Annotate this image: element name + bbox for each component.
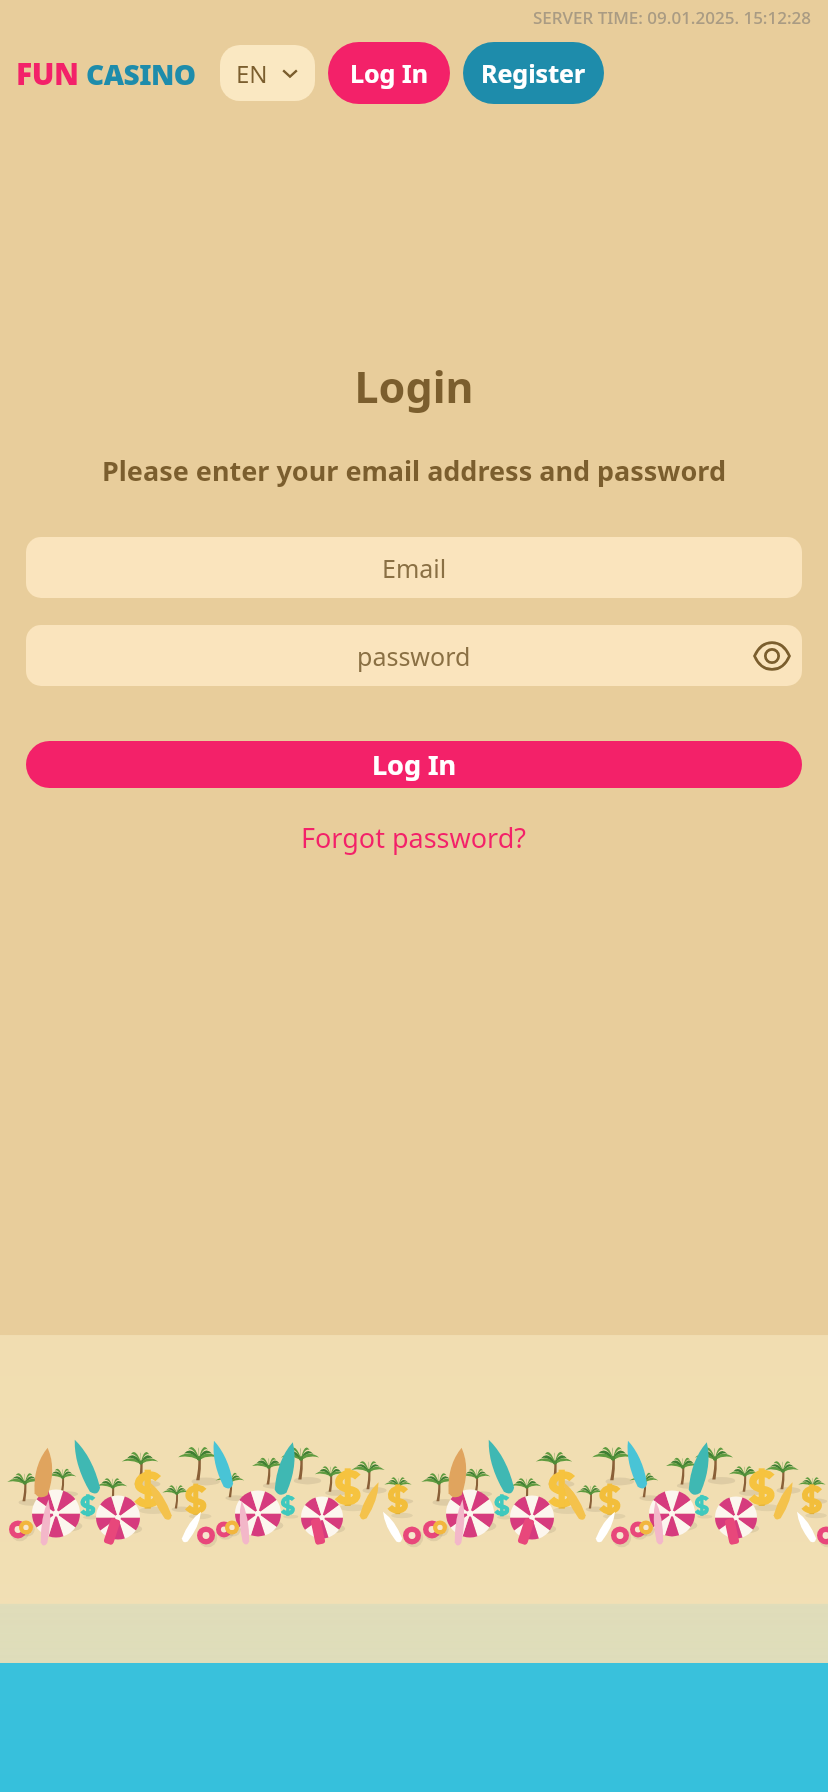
staticText: Please enter your email address and pass… [48,452,780,489]
staticText: FUN [16,53,79,94]
staticText: Register [481,56,586,90]
staticText: password [357,639,471,673]
staticText: EN [236,57,268,90]
button[interactable]: Email [26,537,802,598]
button[interactable]: Register [463,42,604,104]
button[interactable]: Log In [328,42,450,104]
staticText: Log In [350,56,428,90]
staticText: Log In [372,746,457,783]
staticText: CASINO [86,55,196,93]
button[interactable]: password [26,625,802,686]
staticText: Login [0,357,828,416]
button[interactable]: Show password [750,634,794,678]
button[interactable]: Log In [26,741,802,788]
button[interactable]: EN [220,45,315,101]
button[interactable]: Fun Casino home [14,53,198,94]
button[interactable]: Forgot password? [0,819,828,856]
staticText: Email [382,551,447,585]
staticText: SERVER TIME: 09.01.2025. 15:12:28 [533,6,812,29]
staticText: Forgot password? [301,819,527,856]
